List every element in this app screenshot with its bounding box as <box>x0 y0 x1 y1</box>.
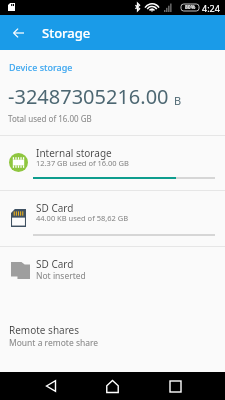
staticText: 4:24 <box>202 2 220 14</box>
button[interactable]: Home <box>99 373 125 399</box>
staticText: Storage <box>42 24 91 42</box>
staticText: SD Card <box>36 201 74 215</box>
button[interactable]: SD Card <box>0 191 225 246</box>
staticText: Not inserted <box>36 270 86 282</box>
staticText: Device storage <box>9 61 73 73</box>
staticText: Remote shares <box>9 323 80 337</box>
staticText: 80% <box>185 4 196 11</box>
button[interactable]: Recent apps <box>162 373 188 399</box>
button[interactable]: Internal storage <box>0 136 225 190</box>
button[interactable]: Remote shares <box>0 319 225 353</box>
staticText: 44.00 KB used of 58,62 GB <box>36 213 129 223</box>
button[interactable]: SD Card <box>0 247 225 295</box>
staticText: B <box>174 93 182 108</box>
button[interactable]: Navigate up <box>6 21 30 45</box>
staticText: Internal storage <box>36 146 112 160</box>
staticText: 12.37 GB used of 16.00 GB <box>36 158 129 168</box>
staticText: -32487305216.00 <box>8 83 169 110</box>
staticText: Mount a remote share <box>9 337 99 349</box>
staticText: SD Card <box>36 257 74 271</box>
button[interactable]: Back <box>38 373 64 399</box>
staticText: Total used of 16.00 GB <box>8 113 92 124</box>
